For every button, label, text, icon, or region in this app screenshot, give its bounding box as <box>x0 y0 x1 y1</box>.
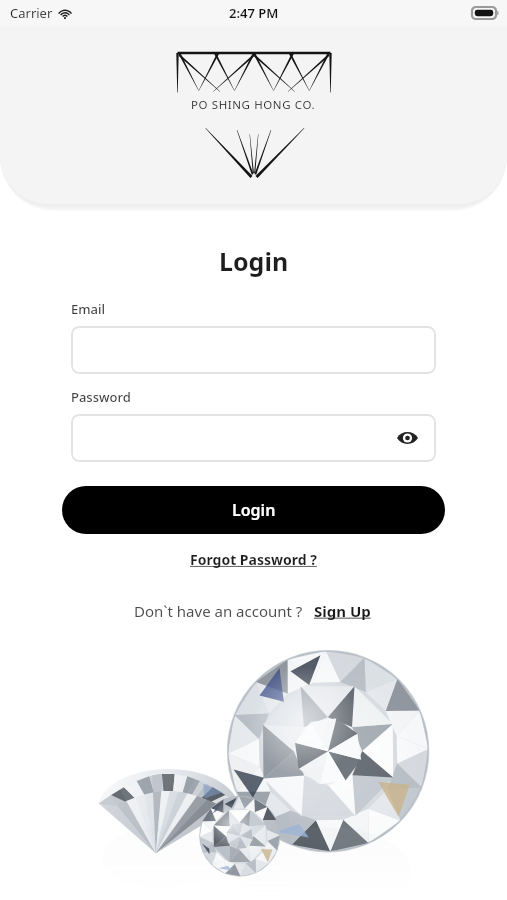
staticText: Login <box>219 244 289 278</box>
staticText: Forgot Password ? <box>190 550 317 569</box>
staticText: Email <box>71 300 106 318</box>
button[interactable]: Sign Up <box>312 599 373 623</box>
staticText: Don`t have an account ? <box>134 601 303 621</box>
staticText: 2:47 PM <box>229 4 279 22</box>
staticText: Sign Up <box>314 601 371 621</box>
staticText: Carrier <box>10 4 53 22</box>
staticText: Password <box>71 388 131 406</box>
button[interactable] <box>71 326 436 374</box>
button[interactable]: Show password <box>392 423 422 453</box>
button[interactable]: Login <box>62 486 445 534</box>
staticText: PO SHING HONG CO. <box>191 97 316 113</box>
staticText: Login <box>232 499 276 521</box>
button[interactable]: Show password <box>71 414 436 462</box>
button[interactable]: Forgot Password ? <box>184 548 323 571</box>
